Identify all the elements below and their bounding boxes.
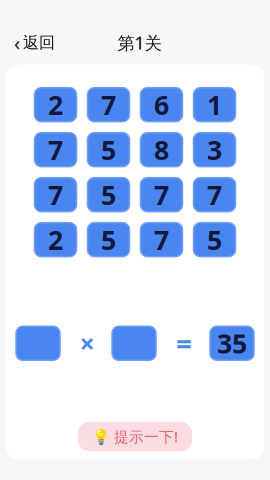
staticText: 2 xyxy=(48,222,63,257)
button[interactable]: 7 xyxy=(140,178,182,212)
button[interactable]: 8 xyxy=(140,133,182,167)
button[interactable]: 5 xyxy=(193,223,235,257)
staticText: 6 xyxy=(154,87,169,122)
button[interactable]: 5 xyxy=(87,223,129,257)
staticText: 第1关 xyxy=(117,31,161,54)
staticText: 7 xyxy=(48,177,63,212)
staticText: 8 xyxy=(154,132,169,167)
staticText: 提示一下! xyxy=(114,427,178,446)
staticText: 5 xyxy=(207,222,222,257)
button[interactable]: 2 xyxy=(34,88,76,122)
button[interactable]: 5 xyxy=(87,178,129,212)
staticText: 7 xyxy=(48,132,63,167)
staticText: 7 xyxy=(154,222,169,257)
button[interactable]: ‹ xyxy=(8,23,61,62)
staticText: 5 xyxy=(101,132,116,167)
staticText: × xyxy=(79,326,94,361)
staticText: 7 xyxy=(207,177,222,212)
button[interactable]: Second factor slot xyxy=(112,326,156,360)
button[interactable]: 1 xyxy=(193,88,235,122)
staticText: 返回 xyxy=(23,33,55,52)
button[interactable]: 7 xyxy=(140,223,182,257)
staticText: 2 xyxy=(48,87,63,122)
staticText: 5 xyxy=(101,177,116,212)
staticText: ‹ xyxy=(14,29,20,56)
button[interactable]: 💡 xyxy=(78,422,192,451)
button[interactable]: 5 xyxy=(87,133,129,167)
staticText: 3 xyxy=(207,132,222,167)
button[interactable]: 3 xyxy=(193,133,235,167)
button[interactable]: 7 xyxy=(34,133,76,167)
staticText: 35 xyxy=(217,326,247,361)
staticText: 7 xyxy=(154,177,169,212)
button[interactable]: First factor slot xyxy=(16,326,60,360)
button[interactable]: 6 xyxy=(140,88,182,122)
staticText: 1 xyxy=(207,87,222,122)
button[interactable]: 7 xyxy=(193,178,235,212)
button[interactable]: 7 xyxy=(34,178,76,212)
button[interactable]: 7 xyxy=(87,88,129,122)
button[interactable]: 2 xyxy=(34,223,76,257)
staticText: 7 xyxy=(101,87,116,122)
staticText: = xyxy=(176,325,192,362)
staticText: 5 xyxy=(101,222,116,257)
staticText: 💡 xyxy=(92,428,110,445)
